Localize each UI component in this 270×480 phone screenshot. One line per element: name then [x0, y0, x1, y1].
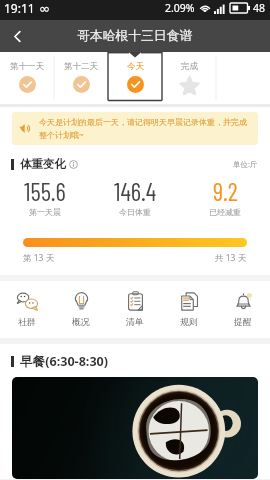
button[interactable]: 完成 — [162, 52, 216, 104]
staticText: 清单 — [126, 317, 144, 328]
staticText: 体重变化 — [20, 157, 66, 171]
staticText: 概况 — [72, 317, 90, 328]
staticText: 早餐(6:30-8:30) — [20, 353, 109, 370]
staticText: 提醒 — [234, 317, 252, 328]
staticText: 完成 — [181, 61, 198, 72]
button[interactable]: 概况 — [54, 291, 108, 328]
button[interactable]: Back — [0, 20, 34, 52]
button[interactable]: 清单 — [108, 291, 162, 328]
button[interactable]: 第十二天 — [54, 52, 108, 104]
staticText: 已经减重 — [209, 207, 241, 217]
staticText: 今天是计划的最后一天，请记得明天早晨记录体重，并完成整个计划哦~ — [39, 117, 250, 140]
staticText: 第十一天 — [10, 61, 44, 72]
staticText: 48 — [253, 1, 266, 15]
staticText: 今日体重 — [119, 207, 151, 217]
button[interactable]: 社群 — [0, 291, 54, 328]
staticText: 单位:斤 — [233, 159, 258, 169]
staticText: ∞ — [39, 1, 50, 16]
staticText: 共 13 天 — [215, 252, 247, 264]
staticText: 9.2 — [213, 176, 238, 206]
staticText: 第十二天 — [64, 61, 98, 72]
staticText: 规则 — [180, 317, 198, 328]
staticText: 社群 — [18, 317, 36, 328]
button[interactable]: 提醒 — [216, 291, 270, 328]
button[interactable]: 今天 — [108, 52, 162, 104]
staticText: 155.6 — [24, 176, 66, 206]
staticText: 第 13 天 — [23, 252, 55, 264]
staticText: 第一天晨 — [29, 207, 61, 217]
staticText: 19:11 — [4, 0, 35, 16]
staticText: 146.4 — [114, 176, 157, 206]
staticText: 2.09% — [165, 1, 195, 15]
staticText: 哥本哈根十三日食谱 — [77, 28, 193, 44]
button[interactable]: 第十一天 — [0, 52, 54, 104]
staticText: 今天 — [127, 61, 144, 72]
button[interactable]: 规则 — [162, 291, 216, 328]
